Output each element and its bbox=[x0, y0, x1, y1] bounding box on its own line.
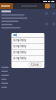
button[interactable]: complexity bbox=[11, 43, 44, 49]
button[interactable]: Thumbs up bbox=[45, 12, 48, 15]
button[interactable]: complexity bbox=[11, 37, 44, 43]
staticText: complexity bbox=[13, 50, 26, 54]
button[interactable]: Close bbox=[29, 62, 41, 67]
button[interactable]: Favourites bbox=[45, 3, 50, 8]
staticText: Close bbox=[31, 63, 39, 66]
button[interactable]: Play pronunciation bbox=[13, 33, 18, 37]
staticText: complexity bbox=[13, 38, 26, 42]
staticText: complexity bbox=[13, 56, 26, 60]
staticText: complexity bbox=[13, 44, 26, 48]
button[interactable]: Share bbox=[45, 22, 48, 25]
button[interactable]: complexity bbox=[11, 49, 44, 55]
button[interactable]: complexity bbox=[11, 55, 44, 61]
button[interactable]: Save bbox=[52, 22, 55, 25]
button[interactable] bbox=[0, 3, 13, 9]
button[interactable]: Thumbs down bbox=[52, 12, 55, 15]
